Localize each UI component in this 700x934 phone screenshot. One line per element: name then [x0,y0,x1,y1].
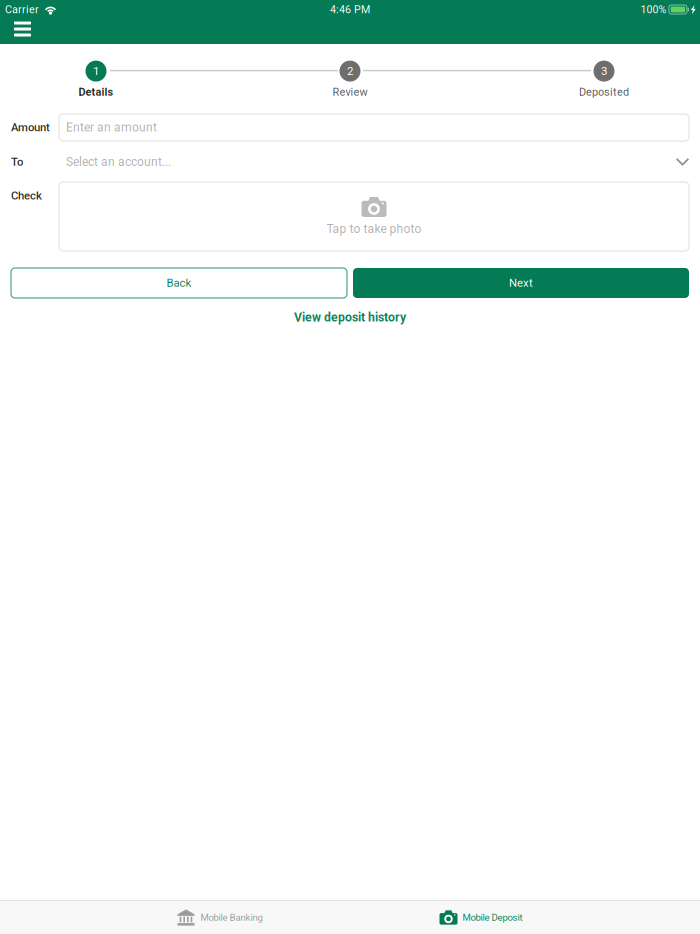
staticText: Mobile Banking [200,912,262,923]
staticText: 2 [347,64,353,78]
staticText: 4:46 PM [330,3,370,16]
button[interactable]: Next [353,268,689,298]
staticText: Next [509,276,533,290]
button[interactable]: Mobile Banking [177,901,262,933]
staticText: Check [11,189,42,202]
staticText: 3 [601,64,607,78]
button[interactable]: Back [11,268,347,298]
button[interactable]: Tap to take photo [59,182,689,251]
staticText: Review [332,86,367,98]
staticText: Back [166,276,191,290]
button[interactable]: Mobile Deposit [439,902,522,933]
staticText: Carrier [5,3,39,16]
staticText: Enter an amount [66,120,157,135]
staticText: To [11,155,23,169]
staticText: Details [78,86,113,98]
button[interactable]: Open menu [0,18,42,43]
staticText: Select an account... [66,155,171,169]
staticText: Mobile Deposit [462,912,522,923]
staticText: Amount [11,121,50,134]
button[interactable]: To [0,142,700,182]
button[interactable]: View deposit history [294,298,406,330]
staticText: Deposited [579,86,629,98]
staticText: 100% [640,3,666,16]
staticText: Tap to take photo [326,222,421,236]
staticText: View deposit history [294,310,406,324]
staticText: 1 [93,64,99,78]
